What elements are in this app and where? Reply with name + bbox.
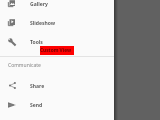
button[interactable]: Share <box>0 78 115 94</box>
other: Send <box>8 101 16 109</box>
staticText: Tools <box>30 39 43 46</box>
button[interactable]: Gallery <box>0 0 115 12</box>
other: Gallery <box>8 0 15 7</box>
button[interactable]: Tools <box>0 34 115 50</box>
other: Share <box>9 82 16 89</box>
staticText: Slideshow <box>30 20 56 27</box>
button[interactable]: Send <box>0 97 115 113</box>
button[interactable]: Custom View <box>40 46 74 55</box>
staticText: Send <box>30 102 43 109</box>
staticText: Gallery <box>30 1 48 8</box>
staticText: Share <box>30 83 45 90</box>
button[interactable]: Slideshow <box>0 15 115 31</box>
staticText: Communicate <box>8 62 41 69</box>
other: Tools <box>8 38 16 46</box>
staticText: Custom View <box>40 47 72 54</box>
other: Slideshow <box>8 19 15 26</box>
